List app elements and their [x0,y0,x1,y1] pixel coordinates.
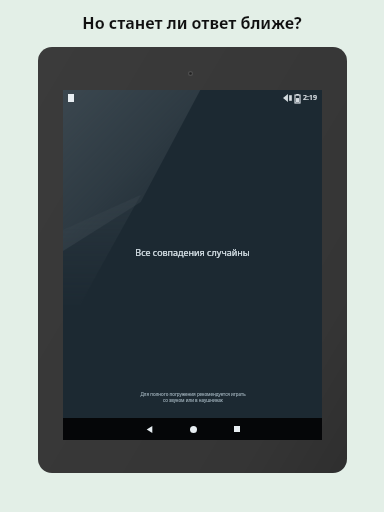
staticText: Для полного погружения рекомендуется игр… [140,391,246,403]
staticText: 2:19 [303,93,317,103]
button[interactable]: Recent apps [215,418,259,440]
staticText: Все совпадения случайны [135,246,250,258]
button[interactable]: Back [127,418,171,440]
staticText: Но станет ли ответ ближе? [82,12,302,34]
button[interactable]: Home [171,418,215,440]
